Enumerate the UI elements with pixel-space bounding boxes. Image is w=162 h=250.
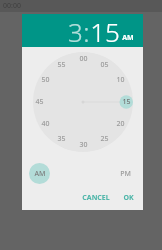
staticText: 50 [41, 75, 50, 85]
staticText: 05 [100, 60, 109, 70]
staticText: 15 [122, 97, 131, 107]
staticText: 55 [57, 60, 66, 70]
staticText: : [83, 14, 90, 47]
button[interactable]: PM [115, 163, 136, 184]
staticText: 10 [116, 75, 125, 85]
staticText: OK [123, 193, 134, 203]
button[interactable]: OK [119, 190, 138, 206]
button[interactable]: 15 [90, 14, 120, 47]
staticText: 25 [100, 134, 109, 144]
staticText: CANCEL [82, 193, 110, 203]
button[interactable]: CANCEL [78, 190, 114, 206]
staticText: PM [120, 169, 131, 179]
staticText: 35 [57, 134, 66, 144]
staticText: 20 [116, 119, 125, 129]
staticText: 45 [35, 97, 44, 107]
button[interactable]: AM [29, 163, 50, 184]
button[interactable]: 3 [68, 14, 83, 47]
button[interactable]: Minute dial [33, 52, 133, 152]
button[interactable]: AM [122, 33, 134, 43]
staticText: 40 [41, 119, 50, 129]
staticText: 30 [79, 140, 88, 150]
staticText: AM [34, 169, 46, 179]
staticText: 00:00 [3, 1, 21, 11]
staticText: 00 [79, 54, 88, 64]
